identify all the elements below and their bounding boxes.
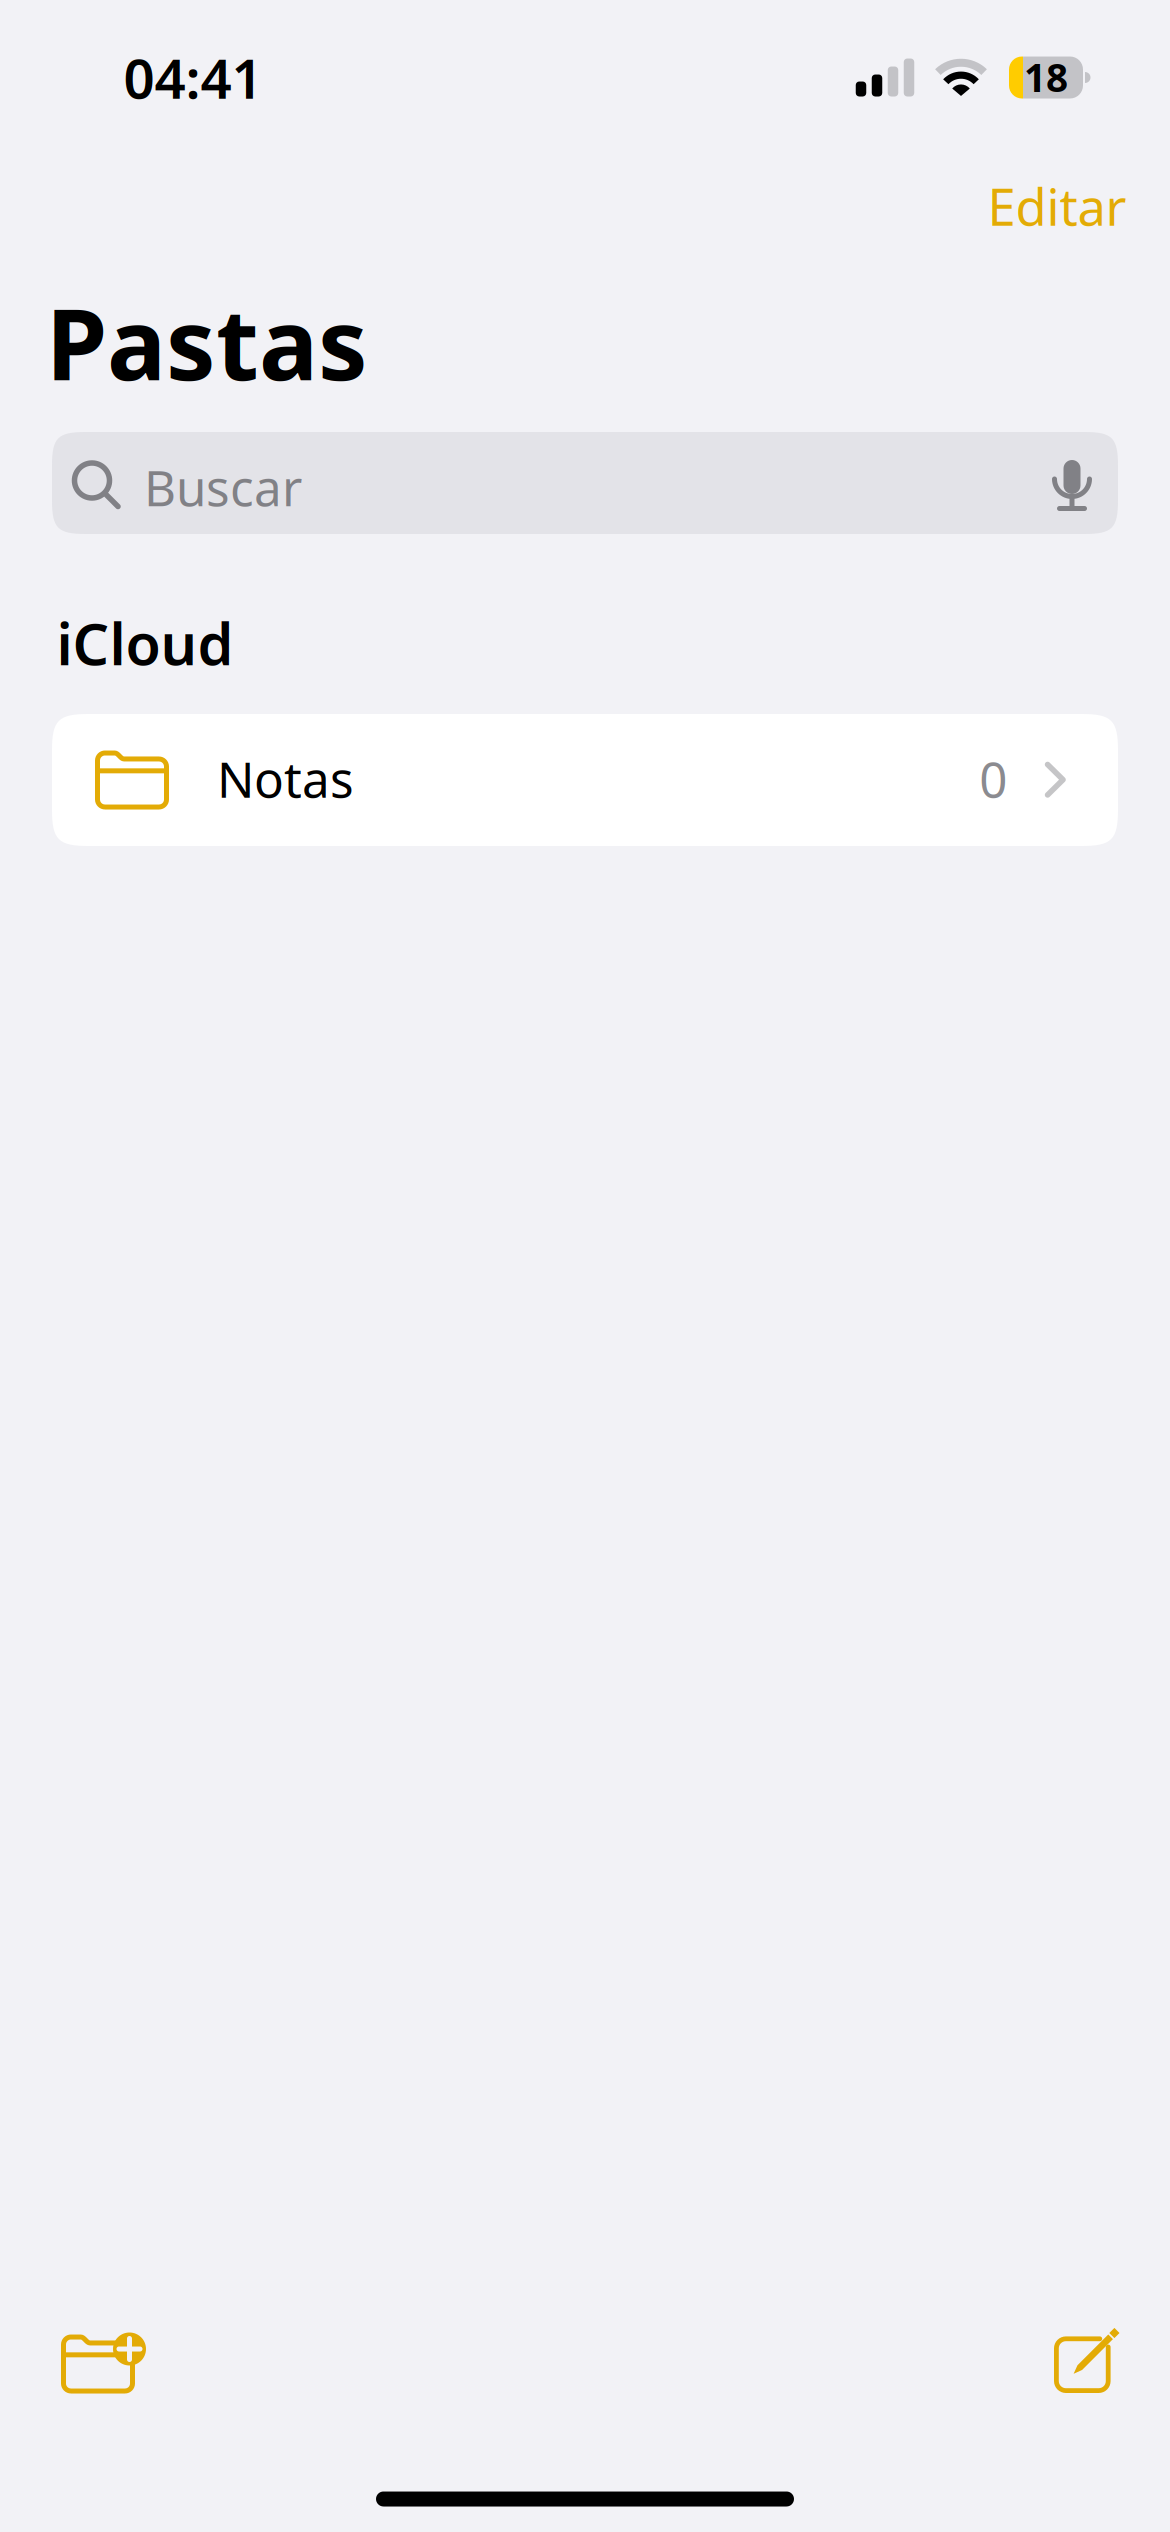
button[interactable]: New Folder [25,2301,170,2422]
staticText: Pastas [46,276,368,407]
staticText: 0 [979,746,1007,811]
staticText: iCloud [56,605,233,681]
staticText: Notas [217,746,354,811]
staticText: Editar [987,172,1126,240]
button[interactable]: New Note [1024,2299,1148,2423]
staticText: 04:41 [123,41,262,114]
button[interactable]: Editar [963,141,1150,271]
staticText: Buscar [144,454,302,520]
button[interactable]: Notas [52,714,1118,846]
staticText: 18 [1024,51,1068,103]
